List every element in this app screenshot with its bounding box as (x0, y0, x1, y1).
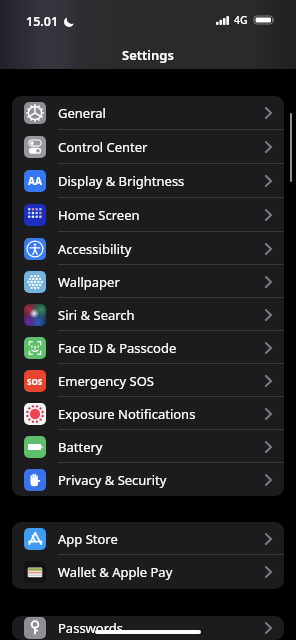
staticText: Display & Brightness (58, 172, 185, 190)
staticText: Siri & Search (58, 306, 135, 324)
button[interactable]: Accessibility (12, 232, 284, 265)
staticText: Wallet & Apple Pay (58, 563, 173, 581)
staticText: Privacy & Security (58, 471, 167, 489)
button[interactable]: Passwords (12, 616, 284, 640)
staticText: Emergency SOS (58, 372, 154, 390)
staticText: Passwords (58, 619, 124, 637)
staticText: Home Screen (58, 206, 140, 224)
button[interactable]: General (12, 96, 284, 130)
staticText: Battery (58, 438, 103, 456)
staticText: SOS (27, 376, 43, 387)
button[interactable]: Face ID & Passcode (12, 331, 284, 364)
button[interactable]: Home Screen (12, 198, 284, 232)
staticText: 15.01 (26, 13, 59, 30)
staticText: Wallpaper (58, 273, 120, 291)
staticText: App Store (58, 530, 118, 548)
staticText: Settings (122, 46, 174, 64)
staticText: AA (28, 174, 42, 188)
button[interactable]: SOS (12, 364, 284, 397)
button[interactable]: Privacy & Security (12, 463, 284, 496)
button[interactable]: AA (12, 164, 284, 198)
button[interactable]: Wallet & Apple Pay (12, 555, 284, 589)
button[interactable]: Exposure Notifications (12, 397, 284, 430)
button[interactable]: Control Center (12, 130, 284, 164)
staticText: Accessibility (58, 240, 132, 258)
staticText: 4G (234, 13, 248, 27)
button[interactable]: Siri & Search (12, 298, 284, 331)
button[interactable]: App Store (12, 522, 284, 555)
staticText: General (58, 104, 106, 122)
button[interactable]: Wallpaper (12, 265, 284, 298)
staticText: Exposure Notifications (58, 405, 196, 423)
staticText: Control Center (58, 138, 148, 156)
button[interactable]: Battery (12, 430, 284, 463)
staticText: Face ID & Passcode (58, 339, 177, 357)
